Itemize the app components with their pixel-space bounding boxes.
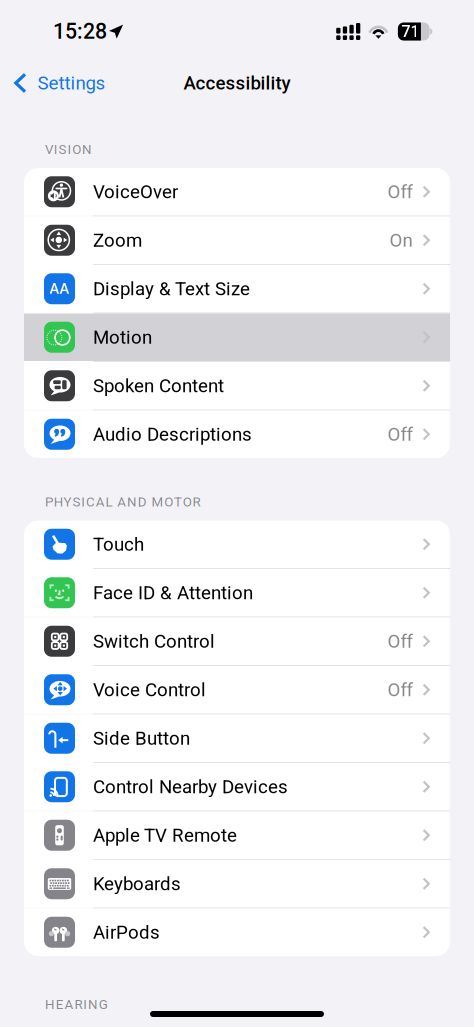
- staticText: Switch Control: [93, 630, 215, 652]
- staticText: Face ID & Attention: [93, 582, 253, 604]
- staticText: Off: [387, 630, 412, 652]
- button[interactable]: Voice Control: [24, 666, 450, 713]
- staticText: Display & Text Size: [93, 278, 250, 300]
- button[interactable]: Side Button: [24, 714, 450, 762]
- staticText: Control Nearby Devices: [93, 776, 288, 798]
- staticText: Accessibility: [183, 72, 290, 94]
- staticText: Keyboards: [93, 873, 181, 895]
- button[interactable]: Settings: [0, 64, 106, 102]
- button[interactable]: Touch: [24, 520, 450, 568]
- staticText: Off: [387, 423, 412, 445]
- staticText: VISION: [45, 142, 92, 157]
- staticText: PHYSICAL AND MOTOR: [45, 494, 201, 510]
- button[interactable]: Switch Control: [24, 617, 450, 665]
- button[interactable]: AirPods: [24, 908, 450, 956]
- button[interactable]: Face ID & Attention: [24, 569, 450, 616]
- button[interactable]: AA: [24, 265, 450, 312]
- button[interactable]: VoiceOver: [24, 168, 450, 215]
- staticText: Motion: [93, 326, 152, 348]
- staticText: Settings: [38, 72, 106, 94]
- staticText: Voice Control: [93, 679, 206, 701]
- staticText: Apple TV Remote: [93, 824, 237, 846]
- staticText: AirPods: [93, 921, 160, 943]
- staticText: VoiceOver: [93, 181, 178, 203]
- button[interactable]: Apple TV Remote: [24, 811, 450, 859]
- staticText: Touch: [93, 533, 144, 555]
- staticText: AA: [49, 280, 69, 297]
- button[interactable]: Zoom: [24, 216, 450, 264]
- staticText: Audio Descriptions: [93, 423, 252, 445]
- button[interactable]: Control Nearby Devices: [24, 763, 450, 810]
- staticText: HEARING: [45, 997, 108, 1012]
- button[interactable]: Keyboards: [24, 860, 450, 907]
- staticText: 71: [401, 22, 419, 41]
- staticText: Off: [387, 679, 412, 701]
- button[interactable]: Audio Descriptions: [24, 410, 450, 458]
- button[interactable]: Spoken Content: [24, 362, 450, 409]
- staticText: On: [389, 229, 412, 251]
- staticText: Off: [387, 181, 412, 203]
- staticText: Zoom: [93, 229, 142, 251]
- staticText: 15:28: [53, 19, 107, 44]
- staticText: Spoken Content: [93, 375, 224, 397]
- staticText: Side Button: [93, 727, 190, 749]
- button[interactable]: Motion: [24, 313, 450, 361]
